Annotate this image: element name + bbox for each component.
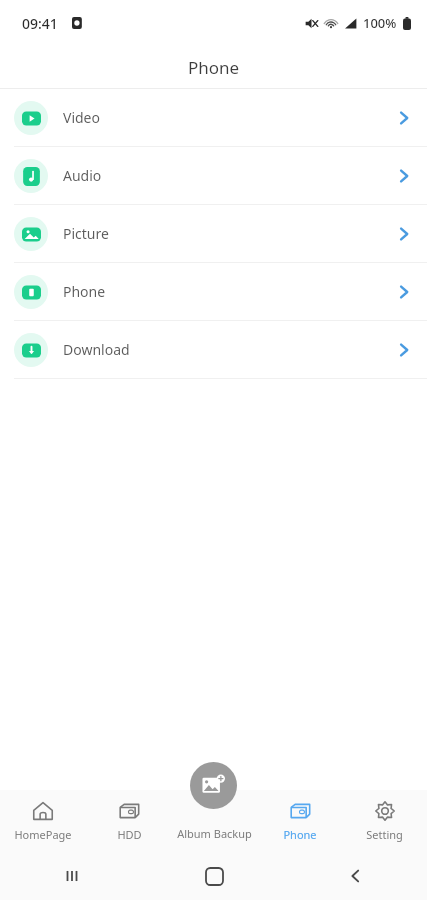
button[interactable]: Album Backup [172, 790, 257, 852]
staticText: Download [63, 340, 130, 359]
button[interactable]: Picture [0, 205, 427, 262]
staticText: HomePage [14, 827, 72, 842]
staticText: Setting [366, 827, 403, 842]
button[interactable]: Phone [0, 263, 427, 320]
button[interactable]: Video [0, 89, 427, 146]
staticText: Phone [283, 827, 317, 842]
button[interactable]: Phone [257, 790, 342, 852]
button[interactable]: HomePage [0, 790, 86, 852]
staticText: Audio [63, 166, 102, 185]
button[interactable]: Album Backup [190, 762, 237, 809]
staticText: HDD [117, 827, 142, 842]
staticText: Picture [63, 224, 109, 243]
staticText: 100% [363, 14, 397, 32]
staticText: Video [63, 108, 100, 127]
button[interactable]: Audio [0, 147, 427, 204]
staticText: 09:41 [22, 14, 58, 33]
button[interactable]: HDD [86, 790, 172, 852]
button[interactable]: Download [0, 321, 427, 378]
button[interactable]: Setting [342, 790, 427, 852]
staticText: Phone [188, 56, 240, 79]
staticText: Phone [63, 282, 106, 301]
staticText: Album Backup [177, 826, 252, 841]
